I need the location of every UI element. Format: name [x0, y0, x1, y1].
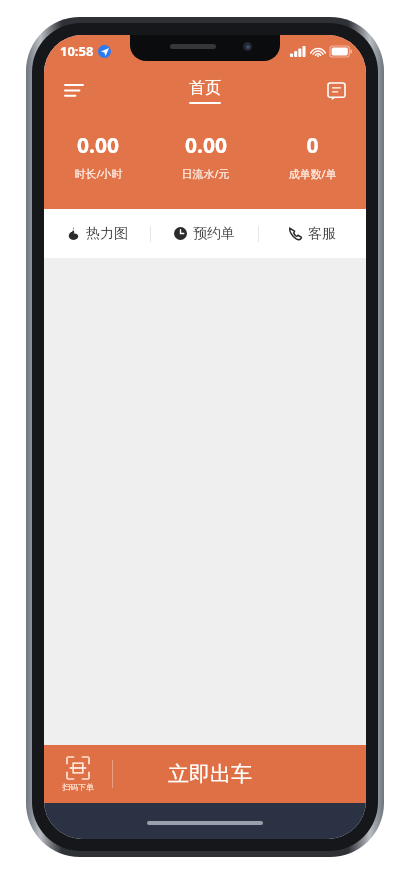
button[interactable]: 0	[259, 131, 366, 181]
staticText: 首页	[189, 78, 221, 98]
button[interactable]: Menu	[52, 69, 96, 113]
button[interactable]: 预约单	[151, 209, 258, 258]
button[interactable]: 0.00	[152, 131, 259, 181]
button[interactable]: 热力图	[44, 209, 150, 258]
staticText: 0.00	[77, 131, 119, 160]
staticText: 0.00	[185, 131, 227, 160]
button[interactable]: 客服	[259, 209, 366, 258]
button[interactable]: 立即出车	[113, 745, 306, 803]
staticText: 日流水/元	[181, 166, 230, 181]
button[interactable]: 扫码下单	[44, 745, 112, 803]
button[interactable]: 0.00	[44, 131, 152, 181]
staticText: 热力图	[86, 225, 128, 243]
button[interactable]: Messages	[314, 69, 358, 113]
staticText: 客服	[308, 225, 336, 243]
staticText: 立即出车	[168, 761, 252, 787]
staticText: 10:58	[60, 42, 94, 60]
staticText: 时长/小时	[74, 166, 123, 181]
staticText: 扫码下单	[62, 782, 94, 792]
staticText: 预约单	[193, 225, 235, 243]
staticText: 0	[306, 131, 319, 160]
staticText: 成单数/单	[288, 166, 337, 181]
